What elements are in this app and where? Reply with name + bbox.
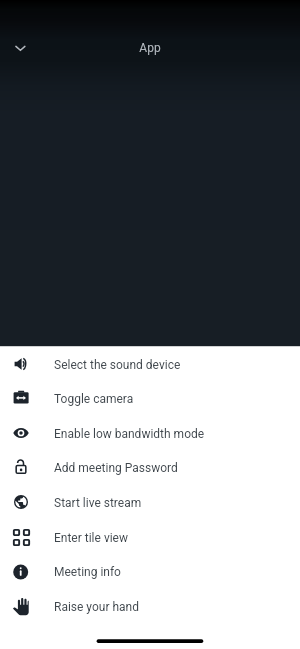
button[interactable]: Collapse [0, 28, 40, 68]
button[interactable]: Add meeting Password [0, 450, 300, 485]
staticText: Add meeting Password [54, 461, 178, 475]
button[interactable]: Meeting info [0, 554, 300, 589]
staticText: Enable low bandwidth mode [54, 427, 205, 441]
staticText: Toggle camera [54, 392, 134, 406]
button[interactable]: Toggle camera [0, 381, 300, 416]
staticText: App [0, 41, 300, 55]
button[interactable]: Start live stream [0, 485, 300, 520]
button[interactable]: Enable low bandwidth mode [0, 416, 300, 451]
staticText: Raise your hand [54, 600, 139, 614]
button[interactable]: Enter tile view [0, 520, 300, 555]
button[interactable]: Select the sound device [0, 347, 300, 382]
staticText: Select the sound device [54, 358, 181, 372]
staticText: Meeting info [54, 565, 121, 579]
staticText: Start live stream [54, 496, 142, 510]
button[interactable]: Raise your hand [0, 589, 300, 624]
staticText: Enter tile view [54, 531, 128, 545]
